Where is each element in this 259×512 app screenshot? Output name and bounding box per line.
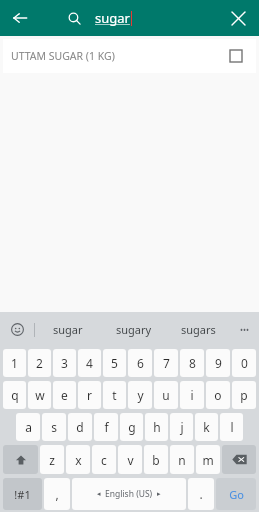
staticText: ◂ — [97, 490, 101, 498]
button[interactable]: q — [3, 381, 26, 409]
button[interactable]: 7 — [154, 349, 178, 377]
button[interactable]: Select item — [226, 46, 246, 66]
button[interactable]: d — [68, 413, 92, 441]
staticText: o — [214, 387, 222, 403]
button[interactable]: g — [120, 413, 143, 441]
staticText: UTTAM SUGAR (1 KG) — [11, 49, 115, 63]
button[interactable]: . — [188, 478, 214, 510]
staticText: k — [203, 419, 210, 435]
button[interactable]: 3 — [53, 349, 76, 377]
button[interactable]: sugar — [53, 312, 83, 347]
staticText: i — [190, 387, 194, 403]
staticText: sugary — [116, 322, 152, 337]
staticText: c — [101, 452, 107, 468]
button[interactable]: Clear search — [225, 5, 251, 31]
staticText: d — [76, 419, 84, 435]
button[interactable]: p — [232, 381, 256, 409]
staticText: 5 — [111, 355, 118, 371]
button[interactable]: 1 — [3, 349, 26, 377]
button[interactable]: Backspace — [222, 445, 256, 474]
button[interactable]: b — [144, 445, 168, 474]
staticText: b — [152, 452, 160, 468]
button[interactable]: 2 — [28, 349, 51, 377]
button[interactable]: ◂ — [72, 478, 186, 510]
staticText: 7 — [163, 355, 170, 371]
button[interactable]: i — [180, 381, 204, 409]
button[interactable]: UTTAM SUGAR (1 KG) — [3, 39, 256, 73]
button[interactable]: w — [28, 381, 51, 409]
button[interactable]: m — [196, 445, 220, 474]
button[interactable]: k — [195, 413, 218, 441]
button[interactable]: t — [103, 381, 126, 409]
button[interactable]: sugar — [68, 3, 132, 33]
button[interactable]: h — [145, 413, 168, 441]
button[interactable]: 0 — [232, 349, 256, 377]
staticText: f — [104, 419, 109, 435]
staticText: !#1 — [14, 487, 31, 502]
staticText: t — [112, 387, 117, 403]
button[interactable]: r — [78, 381, 101, 409]
button[interactable]: j — [170, 413, 193, 441]
button[interactable]: u — [154, 381, 178, 409]
button[interactable]: !#1 — [3, 478, 42, 510]
staticText: j — [180, 419, 184, 435]
staticText: v — [127, 452, 134, 468]
staticText: English (US) — [105, 488, 153, 500]
button[interactable]: l — [220, 413, 243, 441]
staticText: ▸ — [157, 490, 161, 498]
staticText: h — [153, 419, 161, 435]
button[interactable]: Go — [216, 478, 256, 510]
staticText: w — [35, 387, 45, 403]
button[interactable]: f — [94, 413, 118, 441]
staticText: 4 — [86, 355, 93, 371]
staticText: Go — [229, 487, 244, 502]
staticText: p — [240, 387, 248, 403]
staticText: ••• — [240, 324, 250, 335]
button[interactable]: 8 — [180, 349, 204, 377]
staticText: x — [75, 452, 82, 468]
button[interactable]: sugars — [181, 312, 216, 347]
button[interactable]: More suggestions — [231, 312, 259, 347]
staticText: 2 — [36, 355, 43, 371]
staticText: sugar — [95, 9, 130, 27]
button[interactable]: o — [206, 381, 230, 409]
staticText: 0 — [241, 355, 248, 371]
button[interactable]: Shift — [3, 445, 38, 474]
staticText: l — [230, 419, 234, 435]
staticText: 1 — [11, 355, 18, 371]
button[interactable]: 9 — [206, 349, 230, 377]
button[interactable]: n — [170, 445, 194, 474]
button[interactable]: z — [40, 445, 64, 474]
button[interactable]: v — [118, 445, 142, 474]
staticText: q — [11, 387, 19, 403]
staticText: . — [199, 486, 203, 502]
staticText: m — [202, 452, 214, 468]
staticText: , — [55, 486, 59, 502]
button[interactable]: 4 — [78, 349, 101, 377]
button[interactable]: 5 — [103, 349, 126, 377]
button[interactable]: x — [66, 445, 90, 474]
button[interactable]: , — [44, 478, 70, 510]
staticText: 3 — [61, 355, 68, 371]
button[interactable]: y — [128, 381, 152, 409]
staticText: r — [87, 387, 92, 403]
button[interactable]: Voice or emoji — [0, 312, 34, 347]
button[interactable]: 6 — [128, 349, 152, 377]
staticText: s — [51, 419, 57, 435]
staticText: e — [61, 387, 68, 403]
button[interactable]: c — [92, 445, 116, 474]
staticText: u — [162, 387, 170, 403]
button[interactable]: a — [16, 413, 40, 441]
staticText: 9 — [215, 355, 222, 371]
button[interactable]: sugary — [116, 312, 152, 347]
staticText: n — [178, 452, 186, 468]
staticText: 6 — [137, 355, 144, 371]
staticText: y — [137, 387, 144, 403]
button[interactable]: e — [53, 381, 76, 409]
button[interactable]: Back — [6, 4, 34, 32]
staticText: sugar — [53, 322, 83, 337]
button[interactable]: s — [42, 413, 66, 441]
staticText: sugars — [181, 322, 216, 337]
staticText: 8 — [189, 355, 196, 371]
staticText: a — [25, 419, 32, 435]
